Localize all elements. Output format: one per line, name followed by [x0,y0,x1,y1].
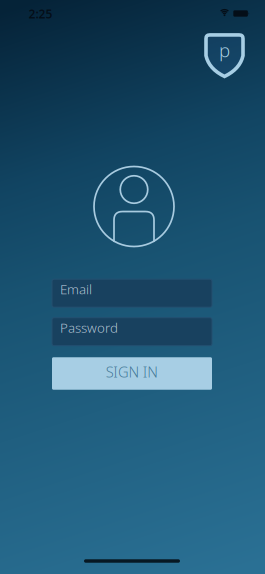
staticText: SIGN IN [106,362,158,382]
staticText: Password [60,319,118,336]
button[interactable]: Email [52,279,212,307]
button[interactable]: Password [52,318,212,346]
staticText: 2:25 [28,6,52,22]
staticText: p [219,38,230,62]
button[interactable]: SIGN IN [52,357,212,390]
staticText: Email [60,280,92,298]
